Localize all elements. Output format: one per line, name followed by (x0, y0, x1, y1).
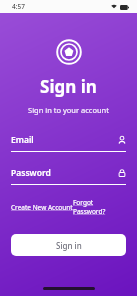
staticText: Password (11, 167, 51, 179)
button[interactable]: Email (11, 133, 126, 152)
staticText: 4:57 (12, 2, 25, 11)
button[interactable]: Forgot Password? (73, 198, 126, 216)
staticText: Forgot Password? (73, 198, 126, 216)
other: Password lock (118, 169, 126, 177)
button[interactable]: Password (11, 166, 126, 185)
staticText: Sign in (40, 75, 97, 98)
staticText: Create New Account (11, 203, 73, 212)
staticText: Sign in to your account (28, 105, 109, 115)
other: Email account (118, 136, 126, 144)
staticText: Sign in (56, 240, 82, 251)
staticText: Email (11, 134, 34, 146)
button[interactable]: Create New Account (11, 203, 73, 212)
button[interactable]: Sign in (11, 234, 126, 256)
